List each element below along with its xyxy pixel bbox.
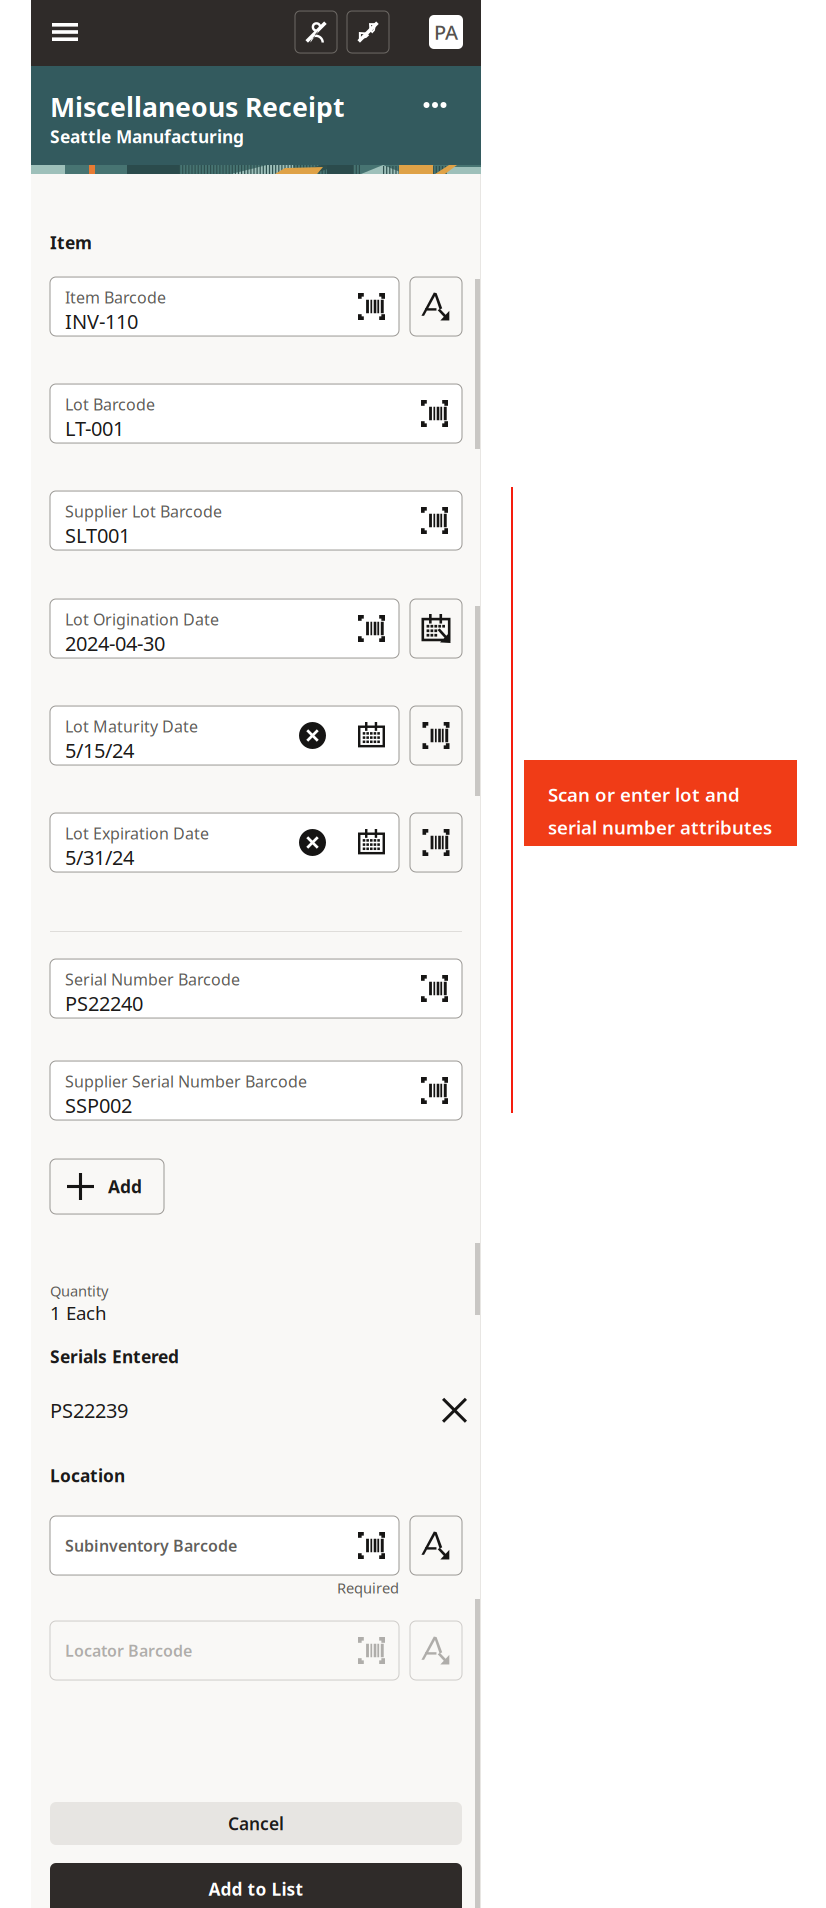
staticText: LT-001 xyxy=(65,415,124,441)
button[interactable]: Enter locator manually xyxy=(410,1621,462,1680)
button[interactable]: Add xyxy=(50,1159,164,1214)
button[interactable]: More options xyxy=(420,90,450,120)
staticText: Required xyxy=(337,1578,399,1597)
button[interactable]: Supplier Serial Number Barcode xyxy=(50,1061,462,1120)
staticText: Subinventory Barcode xyxy=(65,1535,237,1556)
button[interactable]: Menu xyxy=(52,23,78,41)
button[interactable]: Serial Number Barcode xyxy=(50,959,462,1018)
button[interactable]: Lot Maturity Date xyxy=(50,706,399,765)
staticText: Scan or enter lot and xyxy=(548,782,740,807)
staticText: PS22240 xyxy=(65,990,143,1016)
button[interactable]: Locator Barcode xyxy=(50,1621,399,1680)
staticText: Item xyxy=(50,231,92,254)
button[interactable]: Lot Expiration Date xyxy=(50,813,399,872)
button[interactable]: Enter item manually xyxy=(410,277,462,336)
staticText: Supplier Lot Barcode xyxy=(65,501,222,522)
staticText: SSP002 xyxy=(65,1092,132,1118)
staticText: Seattle Manufacturing xyxy=(50,125,244,148)
button[interactable]: Unassigned user xyxy=(295,11,337,53)
staticText: Lot Expiration Date xyxy=(65,823,209,844)
staticText: Add to List xyxy=(208,1877,303,1900)
staticText: Serials Entered xyxy=(50,1345,179,1368)
button[interactable]: Remove PS22239 xyxy=(442,1398,467,1423)
button[interactable]: No tags xyxy=(347,11,389,53)
button[interactable]: Scan expiration date xyxy=(410,813,462,872)
staticText: Serial Number Barcode xyxy=(65,969,240,990)
button[interactable]: Supplier Lot Barcode xyxy=(50,491,462,550)
staticText: Miscellaneous Receipt xyxy=(50,89,345,124)
staticText: Location xyxy=(50,1464,125,1487)
staticText: Lot Origination Date xyxy=(65,609,219,630)
button[interactable]: Add to List xyxy=(50,1863,462,1908)
button[interactable]: Lot Barcode xyxy=(50,384,462,443)
button[interactable]: Profile xyxy=(429,15,463,49)
staticText: 5/31/24 xyxy=(65,844,134,870)
staticText: INV-110 xyxy=(65,308,138,334)
button[interactable]: Item Barcode xyxy=(50,277,399,336)
staticText: Lot Maturity Date xyxy=(65,716,198,737)
staticText: PS22239 xyxy=(50,1397,128,1424)
staticText: Quantity xyxy=(50,1281,108,1300)
staticText: Locator Barcode xyxy=(65,1640,192,1661)
button[interactable]: Lot Origination Date xyxy=(50,599,399,658)
staticText: 2024-04-30 xyxy=(65,630,165,656)
button[interactable]: Cancel xyxy=(50,1802,462,1845)
staticText: Supplier Serial Number Barcode xyxy=(65,1071,307,1092)
button[interactable]: Enter subinventory manually xyxy=(410,1516,462,1575)
staticText: Add xyxy=(108,1175,142,1198)
staticText: Cancel xyxy=(228,1812,284,1835)
staticText: 5/15/24 xyxy=(65,737,134,763)
staticText: Item Barcode xyxy=(65,287,166,308)
staticText: PA xyxy=(434,19,458,45)
staticText: Lot Barcode xyxy=(65,394,155,415)
staticText: serial number attributes xyxy=(548,815,772,840)
staticText: 1 Each xyxy=(50,1300,107,1325)
button[interactable]: Pick origination date xyxy=(410,599,462,658)
button[interactable]: Subinventory Barcode xyxy=(50,1516,399,1575)
button[interactable]: Scan maturity date xyxy=(410,706,462,765)
staticText: SLT001 xyxy=(65,522,130,548)
